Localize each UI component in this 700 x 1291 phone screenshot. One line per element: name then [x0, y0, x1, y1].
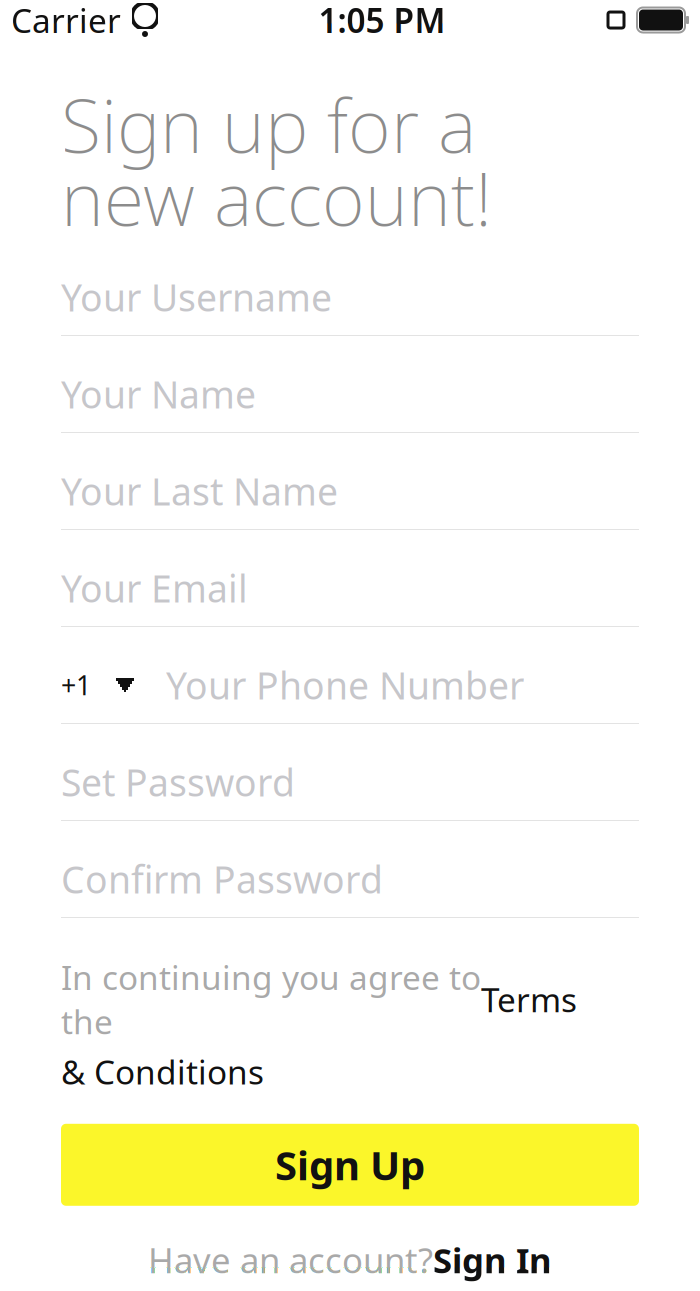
- button[interactable]: In continuing you agree to the: [61, 955, 639, 1094]
- staticText: Your Phone Number: [166, 660, 524, 710]
- staticText: Have an account?: [148, 1237, 433, 1283]
- staticText: Set Password: [61, 757, 295, 807]
- button[interactable]: Your Last Name: [61, 443, 639, 540]
- staticText: Confirm Password: [61, 854, 383, 904]
- button[interactable]: Have an account?: [0, 1237, 700, 1283]
- staticText: In continuing you agree to the: [61, 955, 481, 1043]
- staticText: & Conditions: [61, 1049, 264, 1094]
- button[interactable]: Your Name: [61, 346, 639, 443]
- staticText: Your Last Name: [61, 466, 338, 516]
- staticText: +1: [61, 667, 91, 703]
- button[interactable]: Country code, plus 1: [61, 647, 166, 723]
- staticText: Sign In: [433, 1237, 552, 1283]
- staticText: Your Username: [61, 272, 332, 322]
- button[interactable]: Your Email: [61, 540, 639, 637]
- staticText: Carrier: [11, 0, 121, 42]
- staticText: Sign up for a: [61, 76, 476, 173]
- button[interactable]: Confirm Password: [61, 831, 639, 928]
- staticText: new account!: [61, 149, 492, 246]
- button[interactable]: Your Username: [61, 249, 639, 346]
- button[interactable]: Set Password: [61, 734, 639, 831]
- staticText: Sign Up: [275, 1138, 425, 1191]
- button[interactable]: Your Phone Number: [166, 647, 639, 723]
- staticText: Your Name: [61, 369, 256, 419]
- staticText: Your Email: [61, 563, 248, 613]
- button[interactable]: Sign Up: [61, 1124, 639, 1206]
- staticText: Terms: [481, 977, 577, 1021]
- staticText: 1:05 PM: [318, 0, 445, 42]
